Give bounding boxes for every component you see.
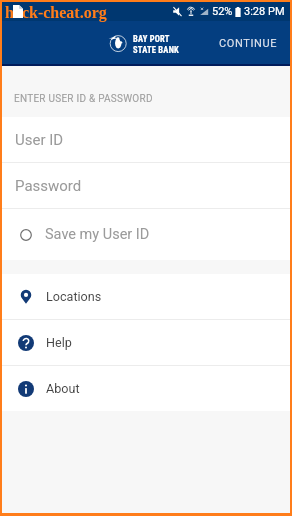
staticText: Password [15, 177, 82, 195]
button[interactable]: About [2, 366, 290, 411]
button[interactable]: Save my User ID [2, 209, 290, 260]
button[interactable]: Help [2, 320, 290, 365]
button[interactable]: User ID [2, 117, 290, 163]
staticText: 52% [212, 5, 233, 18]
staticText: ENTER USER ID & PASSWORD [14, 93, 153, 105]
button[interactable]: Password [2, 163, 290, 209]
button[interactable]: Locations [2, 274, 290, 319]
button[interactable]: CONTINUE [207, 27, 290, 60]
staticText: About [46, 381, 80, 396]
staticText: 3:28 PM [244, 5, 285, 18]
staticText: CONTINUE [219, 37, 278, 50]
staticText: Save my User ID [45, 226, 150, 243]
staticText: BAY PORT [133, 34, 170, 44]
staticText: Help [46, 335, 72, 350]
staticText: User ID [15, 131, 64, 149]
staticText: STATE BANK [133, 45, 179, 55]
staticText: hack-cheat.org [5, 4, 107, 22]
staticText: Locations [46, 289, 102, 304]
